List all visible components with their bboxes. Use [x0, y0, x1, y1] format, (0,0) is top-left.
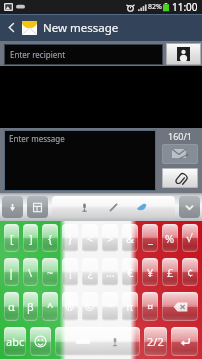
button[interactable]: Download: [2, 196, 23, 218]
staticText: Enter message: [9, 133, 65, 144]
button[interactable]: €: [122, 258, 138, 286]
staticText: abc: [6, 334, 25, 349]
button[interactable]: abc: [4, 327, 26, 356]
button[interactable]: β: [23, 292, 38, 321]
button[interactable]: Backspace: [162, 292, 198, 321]
button[interactable]: Hide keyboard: [179, 196, 200, 218]
staticText: β: [27, 299, 34, 314]
button[interactable]: |: [4, 258, 19, 286]
staticText: 160/1: [168, 130, 192, 142]
staticText: [: [10, 231, 14, 246]
staticText: √: [186, 232, 194, 245]
button[interactable]: >: [102, 224, 118, 252]
staticText: ~: [47, 265, 54, 280]
staticText: ¡: [69, 265, 72, 280]
staticText: |: [8, 265, 15, 280]
staticText: ®: [65, 299, 75, 314]
staticText: >: [107, 231, 114, 246]
button[interactable]: \: [23, 258, 38, 286]
button[interactable]: &: [122, 224, 138, 252]
button[interactable]: Suggestions: [52, 196, 175, 218]
staticText: €: [127, 265, 134, 280]
staticText: ^: [47, 299, 54, 314]
staticText: New message: [43, 20, 119, 36]
button[interactable]: ¢: [182, 258, 198, 286]
button[interactable]: ^: [42, 292, 58, 321]
button[interactable]: [: [4, 224, 19, 252]
staticText: 2/2: [147, 334, 164, 349]
staticText: ]: [29, 231, 33, 246]
button[interactable]: Clipboard: [27, 196, 48, 218]
button[interactable]: Send: [162, 144, 198, 164]
button[interactable]: ©: [82, 292, 98, 321]
button[interactable]: _: [142, 224, 158, 252]
button[interactable]: π: [122, 292, 138, 321]
button[interactable]: ®: [62, 292, 78, 321]
button[interactable]: Attach: [162, 168, 198, 188]
button[interactable]: Space: [55, 327, 140, 356]
button[interactable]: £: [162, 258, 178, 286]
staticText: 11:00: [172, 0, 198, 14]
button[interactable]: {: [42, 224, 58, 252]
staticText: Enter recipient: [10, 49, 66, 60]
staticText: %: [165, 231, 175, 246]
staticText: ©: [85, 299, 95, 314]
button[interactable]: ~: [42, 258, 58, 286]
button[interactable]: Enter message: [4, 130, 156, 191]
staticText: ™: [106, 299, 115, 314]
staticText: _: [148, 231, 153, 246]
button[interactable]: Enter recipient: [4, 44, 163, 65]
button[interactable]: ¤: [142, 292, 158, 321]
staticText: {: [48, 231, 53, 246]
staticText: π: [126, 299, 134, 314]
staticText: ¢: [187, 265, 194, 280]
staticText: …: [106, 265, 115, 280]
button[interactable]: α: [4, 292, 19, 321]
staticText: £: [167, 265, 174, 280]
button[interactable]: Contacts: [166, 43, 201, 65]
staticText: ¤: [147, 299, 154, 314]
button[interactable]: ™: [102, 292, 118, 321]
staticText: &: [126, 231, 135, 246]
staticText: }: [68, 231, 73, 246]
button[interactable]: }: [62, 224, 78, 252]
button[interactable]: Back: [0, 14, 22, 41]
button[interactable]: %: [162, 224, 178, 252]
staticText: ¿: [88, 265, 93, 280]
button[interactable]: ¡: [62, 258, 78, 286]
button[interactable]: ]: [23, 224, 38, 252]
button[interactable]: Emoji: [30, 327, 51, 356]
staticText: α: [8, 299, 15, 314]
button[interactable]: <: [82, 224, 98, 252]
button[interactable]: √: [182, 224, 198, 252]
button[interactable]: ¿: [82, 258, 98, 286]
button[interactable]: Enter: [171, 327, 198, 356]
staticText: <: [87, 231, 94, 246]
button[interactable]: …: [102, 258, 118, 286]
staticText: 82%: [148, 2, 162, 12]
button[interactable]: 2/2: [144, 327, 167, 356]
button[interactable]: ¥: [142, 258, 158, 286]
staticText: ¥: [147, 265, 154, 280]
staticText: \: [28, 265, 33, 280]
